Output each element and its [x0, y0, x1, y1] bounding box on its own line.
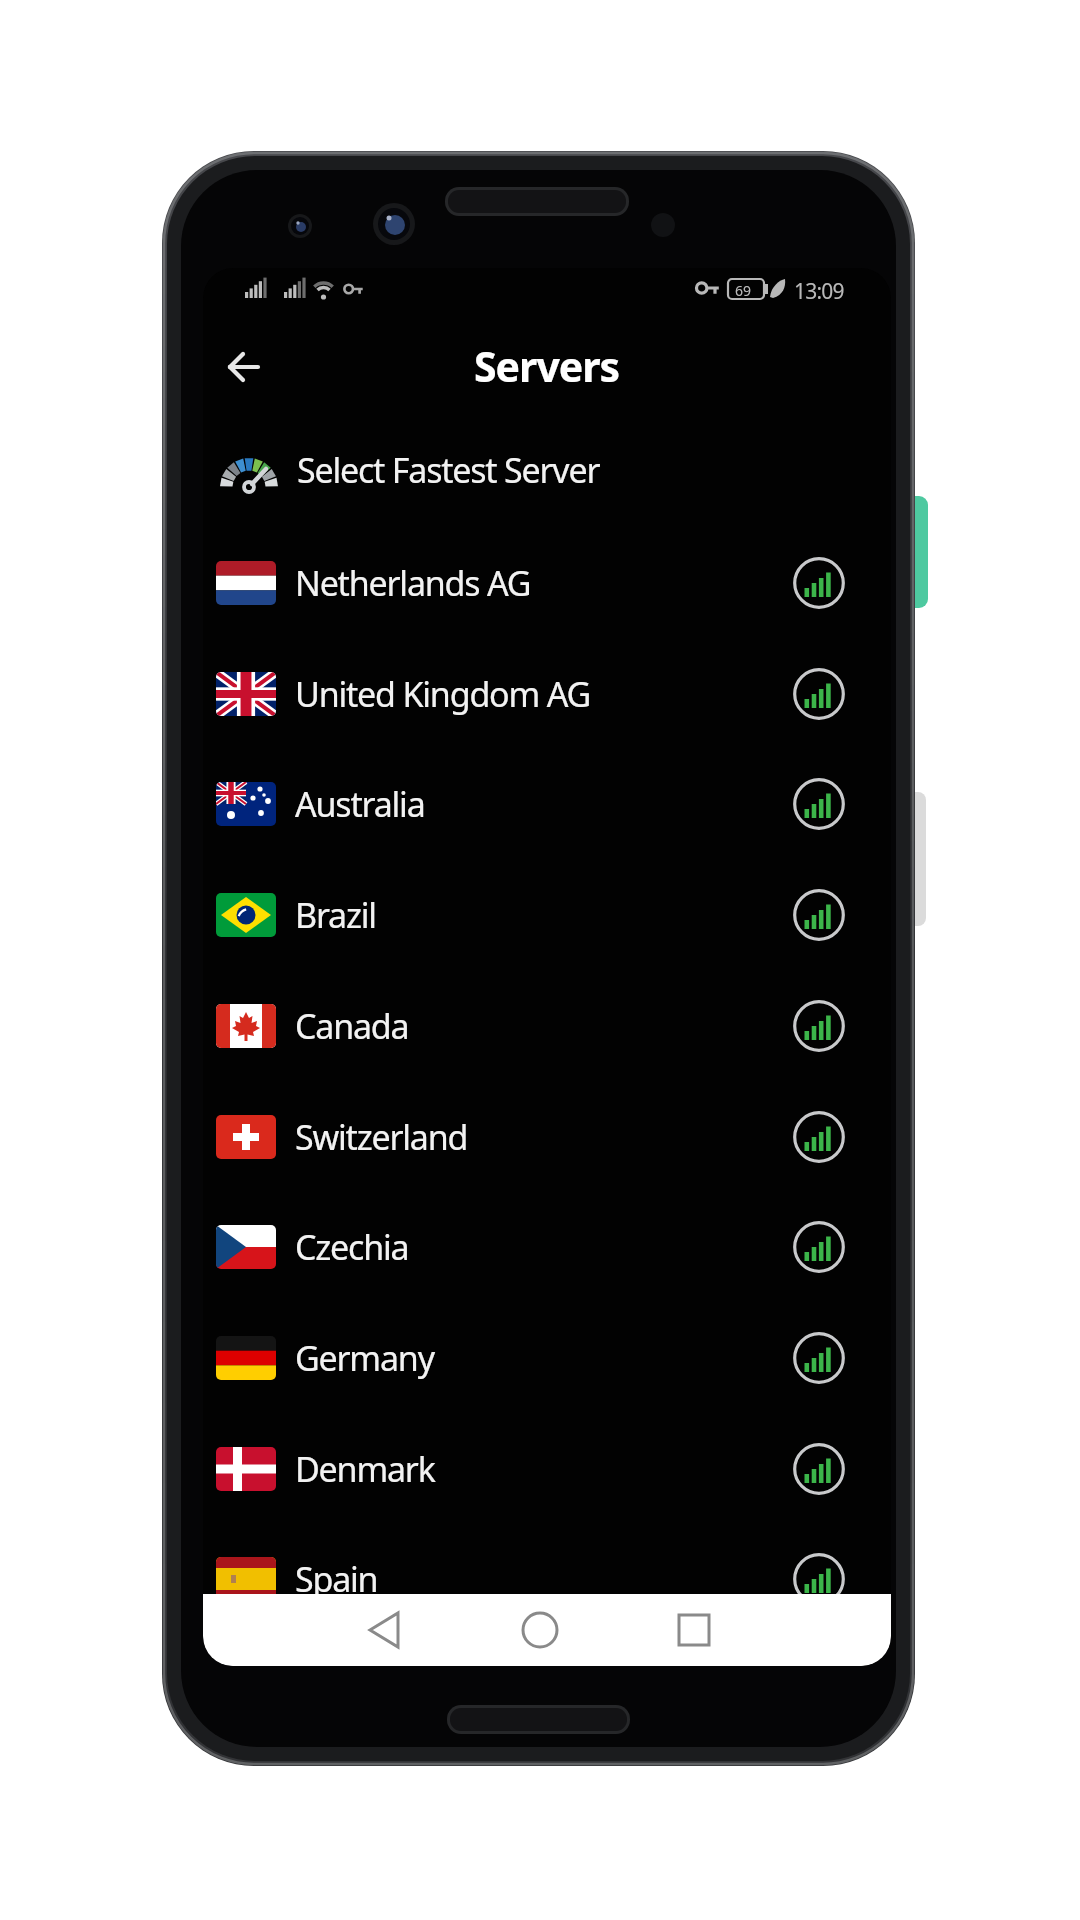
staticText: Spain	[295, 1556, 378, 1602]
button[interactable]: Czechia	[203, 1192, 891, 1302]
staticText: Netherlands AG	[295, 560, 531, 606]
staticText: Australia	[295, 781, 425, 827]
button[interactable]: Brazil	[203, 860, 891, 970]
staticText: Denmark	[295, 1446, 435, 1492]
staticText: 69	[735, 281, 752, 300]
button[interactable]: Germany	[203, 1303, 891, 1413]
staticText: Brazil	[295, 892, 376, 938]
button[interactable]: Denmark	[203, 1414, 891, 1524]
button[interactable]	[342, 1602, 398, 1658]
staticText: Canada	[295, 1003, 409, 1049]
button[interactable]: Netherlands AG	[203, 528, 891, 638]
button[interactable]: Switzerland	[203, 1082, 891, 1192]
staticText: Czechia	[295, 1224, 409, 1270]
button[interactable]: Australia	[203, 749, 891, 859]
staticText: Select Fastest Server	[297, 447, 600, 493]
staticText: Switzerland	[295, 1114, 468, 1160]
button[interactable]	[512, 1602, 568, 1658]
button[interactable]: United Kingdom AG	[203, 639, 891, 749]
button[interactable]	[227, 350, 261, 384]
button[interactable]: Canada	[203, 971, 891, 1081]
button[interactable]: Spain	[203, 1524, 891, 1634]
staticText: United Kingdom AG	[295, 671, 591, 717]
button[interactable]: Select Fastest Server	[203, 415, 891, 525]
button[interactable]	[651, 1602, 707, 1658]
staticText: Servers	[474, 338, 620, 394]
staticText: Germany	[295, 1335, 434, 1381]
staticText: 13:09	[794, 277, 844, 306]
